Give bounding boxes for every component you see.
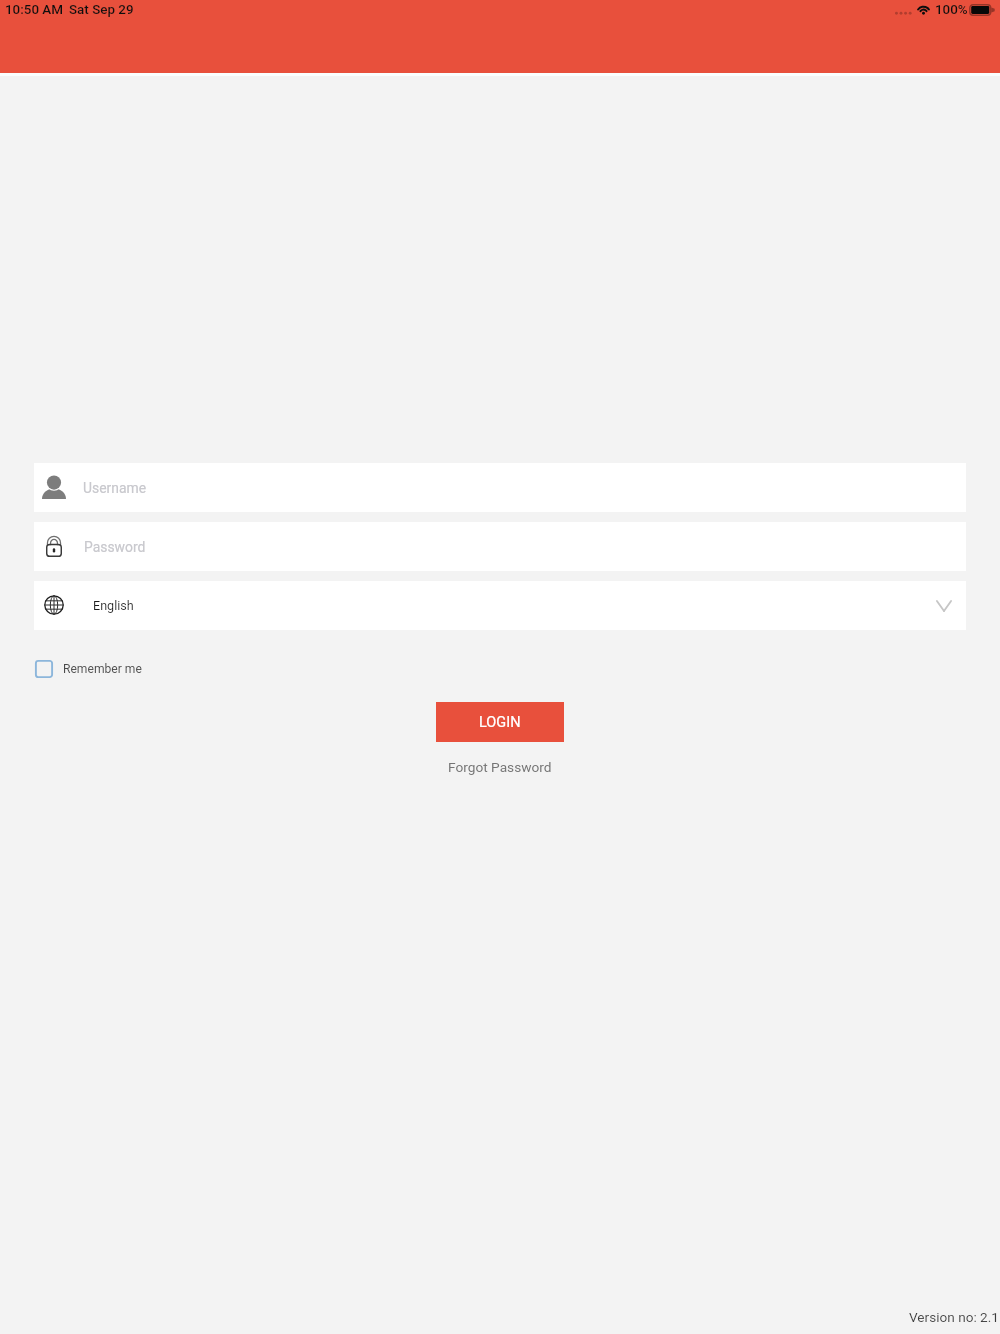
button[interactable]: LOGIN: [436, 702, 564, 742]
staticText: 100%: [935, 2, 968, 18]
staticText: LOGIN: [479, 714, 521, 731]
other: Select language: [936, 600, 952, 612]
staticText: Version no: 2.1: [909, 1309, 999, 1325]
staticText: Remember me: [63, 662, 142, 676]
staticText: Forgot Password: [448, 759, 552, 775]
button[interactable]: Forgot Password: [438, 751, 562, 783]
other: Cellular signal: [895, 10, 913, 16]
staticText: Username: [83, 480, 147, 496]
staticText: 10:50 AM: [5, 2, 63, 18]
button[interactable]: Remember me: [35, 660, 142, 678]
staticText: English: [93, 598, 134, 613]
button[interactable]: Password: [34, 522, 966, 571]
other: Wi-Fi: [916, 3, 931, 15]
staticText: Sat Sep 29: [69, 2, 134, 18]
staticText: Password: [84, 539, 146, 555]
button[interactable]: Username: [34, 463, 966, 512]
button[interactable]: English: [34, 581, 966, 630]
